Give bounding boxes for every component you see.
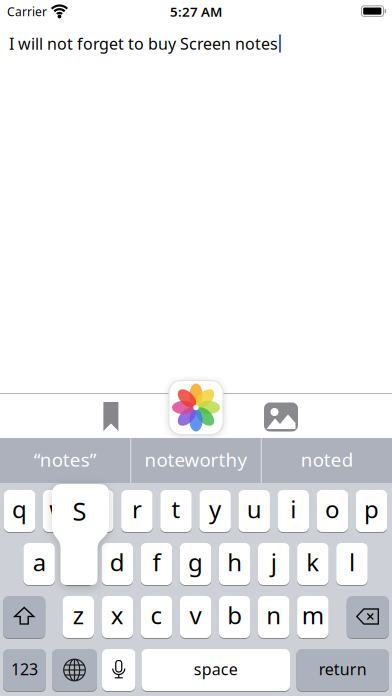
staticText: u	[247, 493, 262, 525]
staticText: v	[190, 599, 202, 631]
staticText: return	[319, 658, 367, 680]
button[interactable]: Insert photo	[264, 402, 298, 431]
button[interactable]: n	[258, 595, 289, 638]
staticText: noted	[301, 447, 353, 472]
staticText: I will not forget to buy Screen notes	[9, 33, 278, 54]
staticText: y	[209, 493, 221, 525]
staticText: l	[349, 546, 355, 578]
button[interactable]: l	[336, 542, 368, 585]
button[interactable]: noteworthy	[132, 438, 260, 483]
button[interactable]: h	[219, 542, 250, 585]
button[interactable]: Bookmarks	[103, 402, 118, 431]
button[interactable]: “notes”	[1, 438, 129, 483]
button[interactable]: Photos	[169, 380, 223, 434]
button[interactable]: b	[219, 595, 250, 638]
button[interactable]: Next keyboard	[52, 648, 97, 691]
staticText: k	[306, 546, 319, 578]
staticText: j	[271, 546, 277, 578]
button[interactable]: Shift	[3, 595, 45, 638]
staticText: 5:27 AM	[170, 3, 222, 20]
staticText: Carrier	[7, 3, 47, 19]
staticText: h	[227, 546, 242, 578]
staticText: f	[152, 546, 160, 578]
button[interactable]: return	[296, 648, 389, 691]
button[interactable]: i	[278, 489, 309, 532]
button[interactable]: v	[180, 595, 211, 638]
button[interactable]: noted	[263, 438, 391, 483]
button[interactable]: c	[141, 595, 172, 638]
button[interactable]: u	[238, 489, 270, 532]
staticText: x	[111, 599, 124, 631]
staticText: i	[290, 493, 296, 525]
staticText: space	[194, 658, 238, 680]
button[interactable]: z	[62, 595, 94, 638]
staticText: t	[171, 493, 180, 525]
staticText: noteworthy	[144, 447, 247, 472]
staticText: p	[364, 493, 379, 525]
button[interactable]: f	[141, 542, 172, 585]
button[interactable]: d	[102, 542, 133, 585]
button[interactable]: t	[160, 489, 192, 532]
button[interactable]: x	[102, 595, 133, 638]
staticText: o	[325, 493, 340, 525]
button[interactable]: a	[23, 542, 55, 585]
button[interactable]: Delete	[347, 595, 389, 638]
staticText: d	[110, 546, 125, 578]
staticText: g	[188, 546, 203, 578]
button[interactable]: Dictation	[102, 648, 135, 691]
button[interactable]: space	[141, 648, 290, 691]
button[interactable]: e	[82, 489, 114, 532]
button[interactable]: 123	[3, 648, 46, 691]
staticText: 123	[11, 658, 38, 680]
button[interactable]: p	[356, 489, 387, 532]
staticText: q	[12, 493, 27, 525]
staticText: n	[266, 599, 281, 631]
staticText: “notes”	[34, 447, 97, 472]
button[interactable]: q	[4, 489, 35, 532]
button[interactable]: g	[180, 542, 211, 585]
staticText: m	[302, 599, 324, 631]
button[interactable]: m	[297, 595, 329, 638]
button[interactable]: o	[317, 489, 348, 532]
staticText: c	[150, 599, 162, 631]
staticText: S	[72, 494, 86, 528]
staticText: b	[227, 599, 242, 631]
button[interactable]: w	[43, 489, 74, 532]
button[interactable]: k	[297, 542, 329, 585]
button[interactable]: r	[121, 489, 153, 532]
button[interactable]: j	[258, 542, 289, 585]
staticText: z	[73, 599, 84, 631]
staticText: r	[132, 493, 142, 525]
button[interactable]: s	[62, 542, 94, 585]
staticText: w	[49, 493, 68, 525]
staticText: a	[33, 546, 46, 578]
button[interactable]: y	[199, 489, 231, 532]
